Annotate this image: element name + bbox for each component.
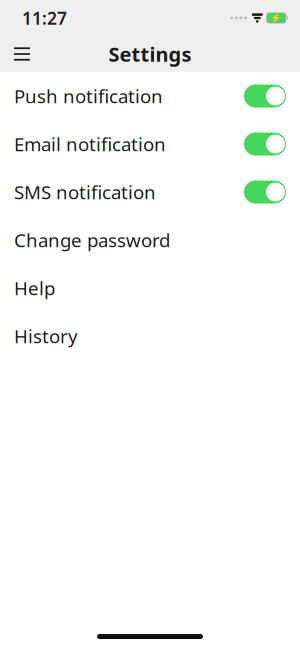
button[interactable]: History (0, 312, 300, 360)
staticText: Email notification (14, 132, 166, 156)
button[interactable]: Email notification (0, 120, 300, 168)
button[interactable]: Help (0, 264, 300, 312)
button[interactable]: SMS notification (0, 168, 300, 216)
staticText: Change password (14, 228, 170, 252)
button[interactable]: Menu (4, 36, 40, 72)
staticText: Settings (108, 41, 191, 67)
staticText: Help (14, 276, 55, 300)
staticText: 11:27 (22, 6, 67, 29)
staticText: History (14, 324, 78, 348)
staticText: Push notification (14, 84, 163, 108)
staticText: ⚡ (270, 13, 282, 23)
staticText: SMS notification (14, 180, 156, 204)
button[interactable]: Push notification (0, 72, 300, 120)
button[interactable]: Change password (0, 216, 300, 264)
